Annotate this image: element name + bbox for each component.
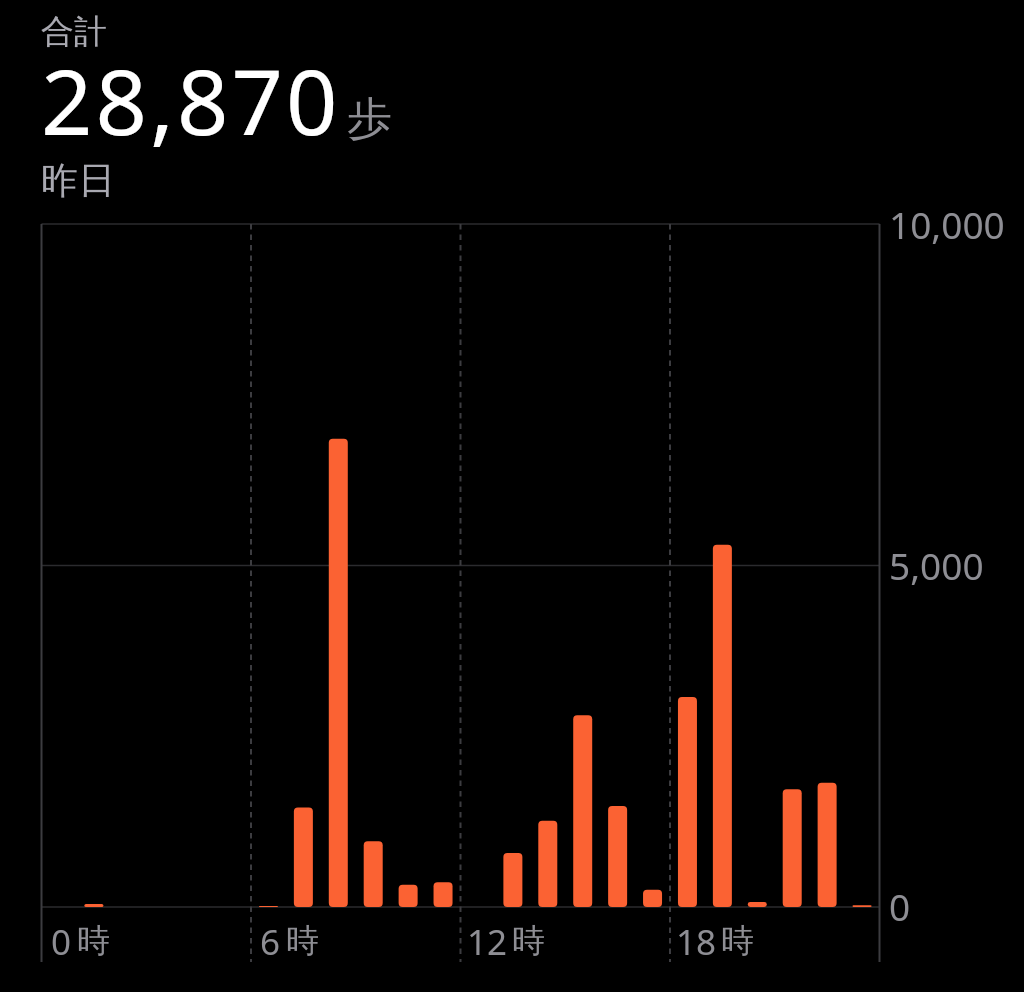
staticText: 合計 (41, 11, 107, 53)
staticText: 5,000 (889, 540, 984, 590)
staticText: 18 (676, 918, 717, 966)
staticText: 12 (467, 918, 508, 966)
staticText: 歩 (347, 91, 392, 148)
staticText: 0 (889, 881, 911, 931)
button[interactable]: 合計 28,870 歩 昨日 (0, 0, 1024, 205)
staticText: 6 (260, 918, 281, 966)
staticText: 0 (51, 918, 72, 966)
staticText: 28,870 (41, 39, 341, 162)
staticText: 時 (721, 920, 754, 962)
staticText: 10,000 (889, 199, 1005, 249)
staticText: 昨日 (41, 157, 115, 204)
staticText: 時 (286, 920, 319, 962)
button[interactable]: 1日の歩数グラフ (30, 210, 890, 975)
staticText: 時 (512, 920, 545, 962)
staticText: 時 (77, 920, 110, 962)
